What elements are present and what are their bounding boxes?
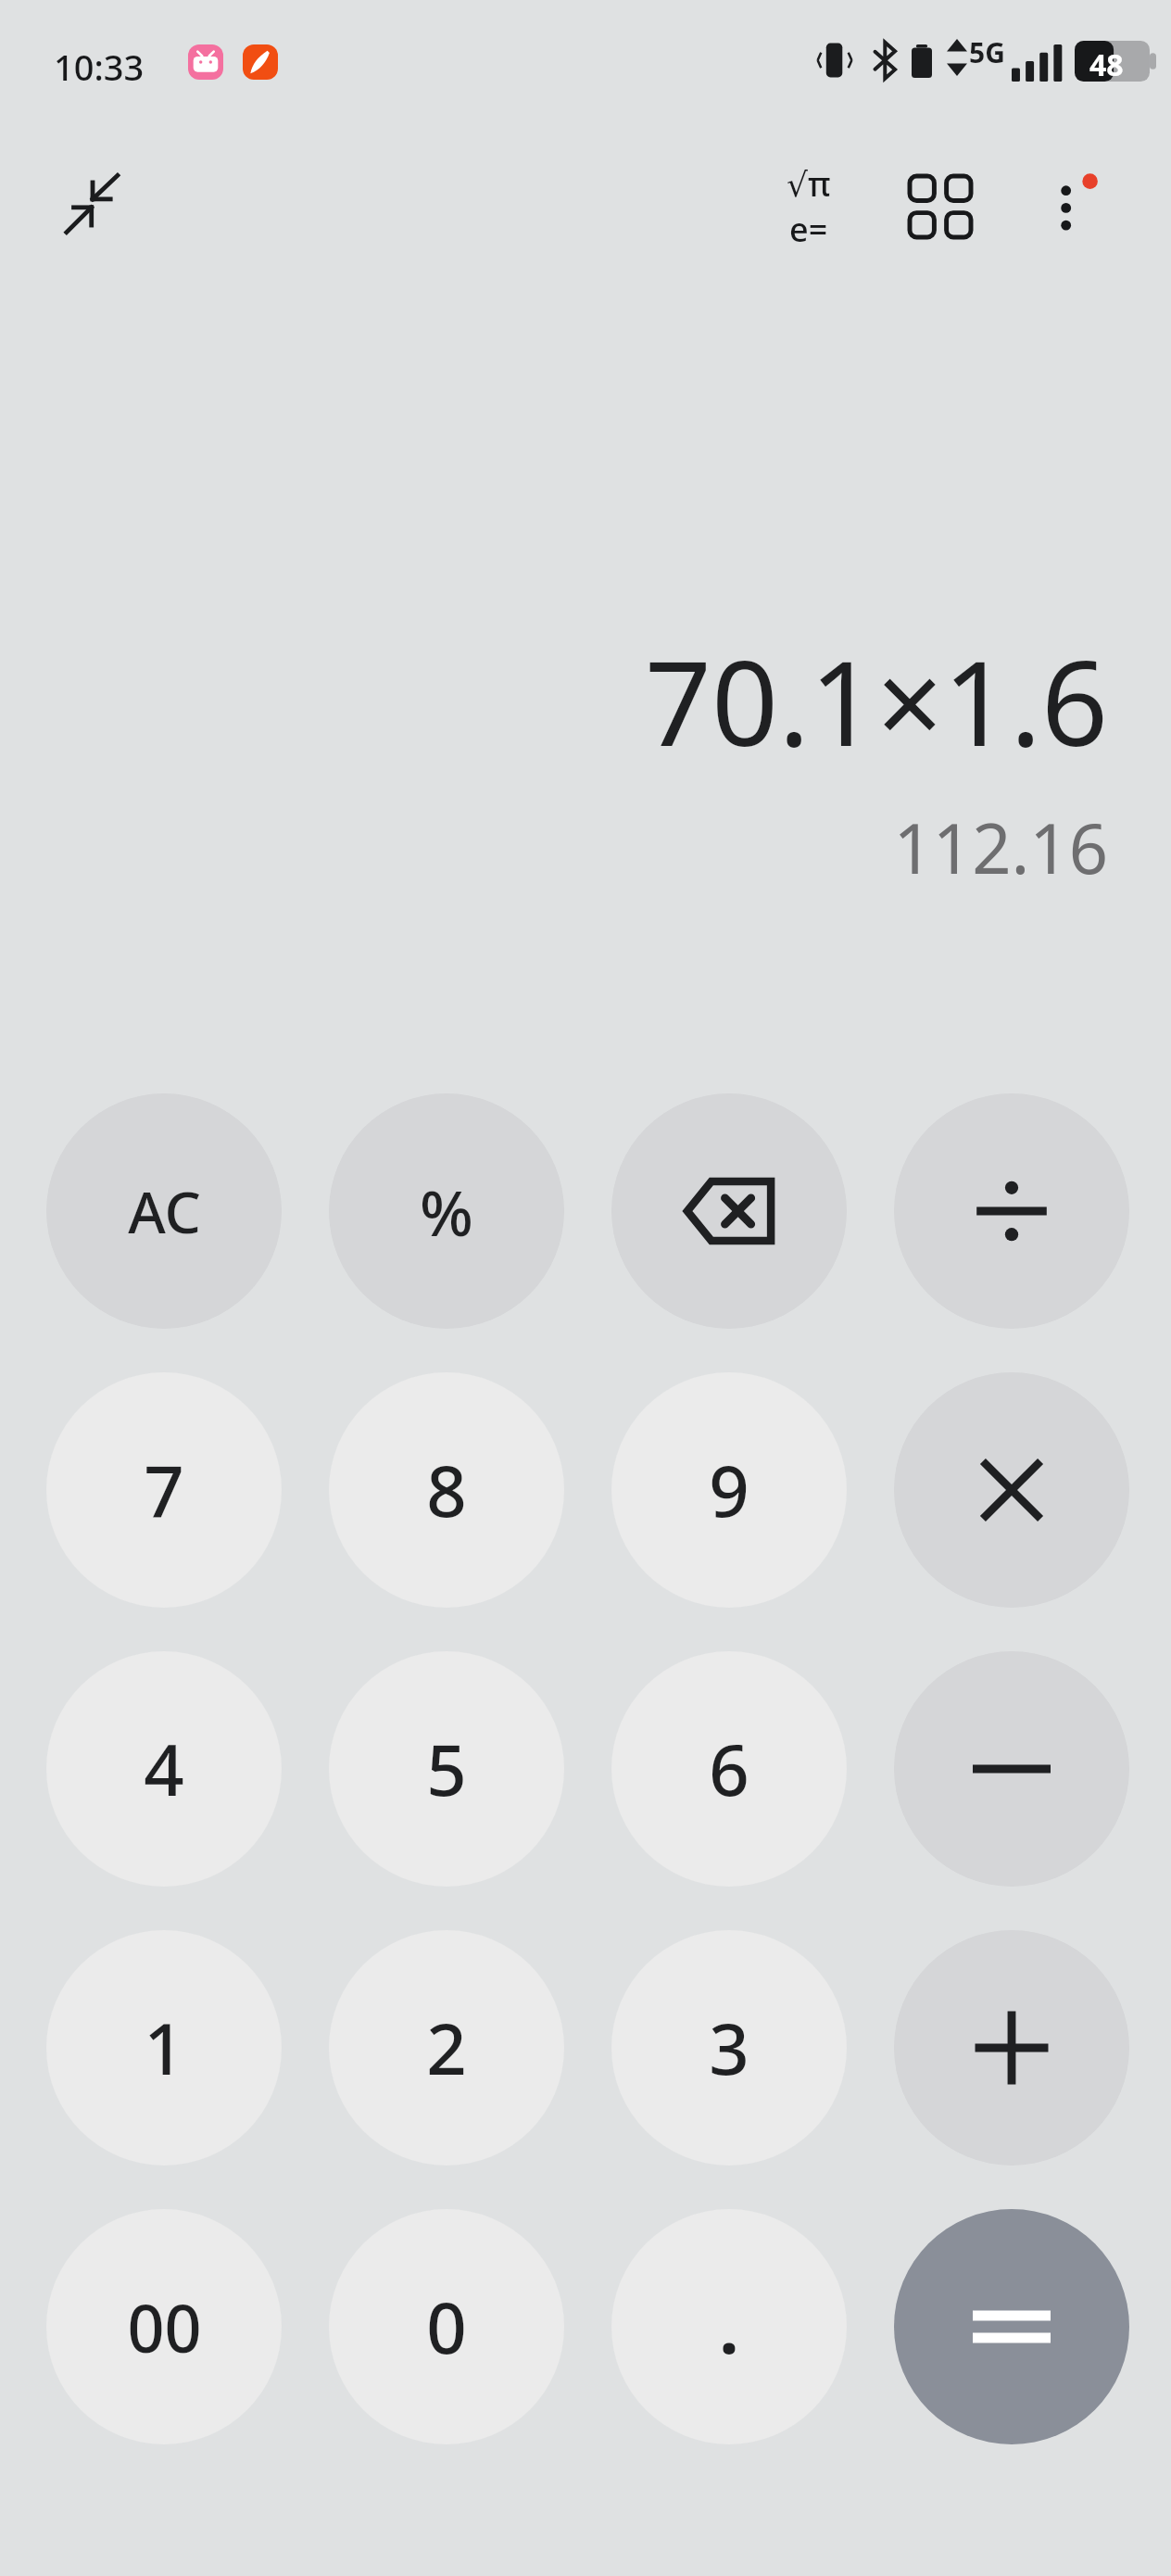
staticText: 2 (426, 2000, 467, 2096)
button[interactable]: 5 (329, 1651, 564, 1887)
staticText: . (719, 2279, 739, 2375)
staticText: 3 (709, 2000, 749, 2096)
button[interactable]: 9 (611, 1372, 847, 1608)
staticText: e= (789, 207, 828, 252)
button[interactable]: 2 (329, 1930, 564, 2166)
staticText: 5 (426, 1721, 467, 1817)
button[interactable]: Divide (894, 1093, 1129, 1329)
staticText: 0 (426, 2279, 467, 2375)
button[interactable]: AC (46, 1093, 282, 1329)
staticText: √π (787, 161, 831, 207)
button[interactable]: . (611, 2209, 847, 2444)
staticText: 7 (144, 1442, 184, 1538)
button[interactable]: % (329, 1093, 564, 1329)
staticText: 70.1×1.6 (645, 621, 1108, 780)
staticText: 9 (709, 1442, 749, 1538)
button[interactable]: Backspace (611, 1093, 847, 1329)
staticText: 48 (1089, 44, 1124, 85)
button[interactable]: 4 (46, 1651, 282, 1887)
button[interactable]: More options (1019, 156, 1121, 258)
button[interactable]: 7 (46, 1372, 282, 1608)
staticText: 1 (144, 2000, 184, 2096)
button[interactable]: 6 (611, 1651, 847, 1887)
button[interactable]: Scientific mode (758, 156, 860, 258)
button[interactable]: 0 (329, 2209, 564, 2444)
button[interactable]: Collapse (37, 148, 148, 259)
button[interactable]: 3 (611, 1930, 847, 2166)
button[interactable]: 00 (46, 2209, 282, 2444)
button[interactable]: Multiply (894, 1372, 1129, 1608)
staticText: 6 (709, 1721, 749, 1817)
staticText: 8 (426, 1442, 467, 1538)
staticText: 5G (969, 33, 1005, 71)
button[interactable]: 8 (329, 1372, 564, 1608)
staticText: 4 (144, 1721, 184, 1817)
button[interactable]: History (889, 156, 991, 258)
staticText: 00 (127, 2283, 202, 2371)
button[interactable]: Plus (894, 1930, 1129, 2166)
staticText: % (420, 1168, 473, 1255)
button[interactable]: Equals (894, 2209, 1129, 2444)
staticText: 10:33 (54, 43, 145, 91)
button[interactable]: Minus (894, 1651, 1129, 1887)
staticText: AC (128, 1172, 201, 1250)
button[interactable]: 1 (46, 1930, 282, 2166)
staticText: 112.16 (893, 801, 1108, 894)
